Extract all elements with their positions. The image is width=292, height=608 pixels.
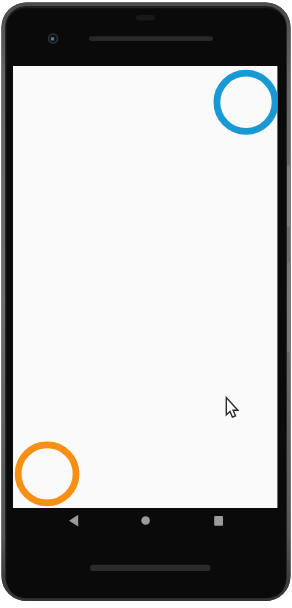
button[interactable] <box>59 505 89 535</box>
button[interactable] <box>131 505 161 535</box>
button[interactable] <box>213 70 279 136</box>
button[interactable] <box>15 441 80 506</box>
button[interactable] <box>204 505 234 535</box>
